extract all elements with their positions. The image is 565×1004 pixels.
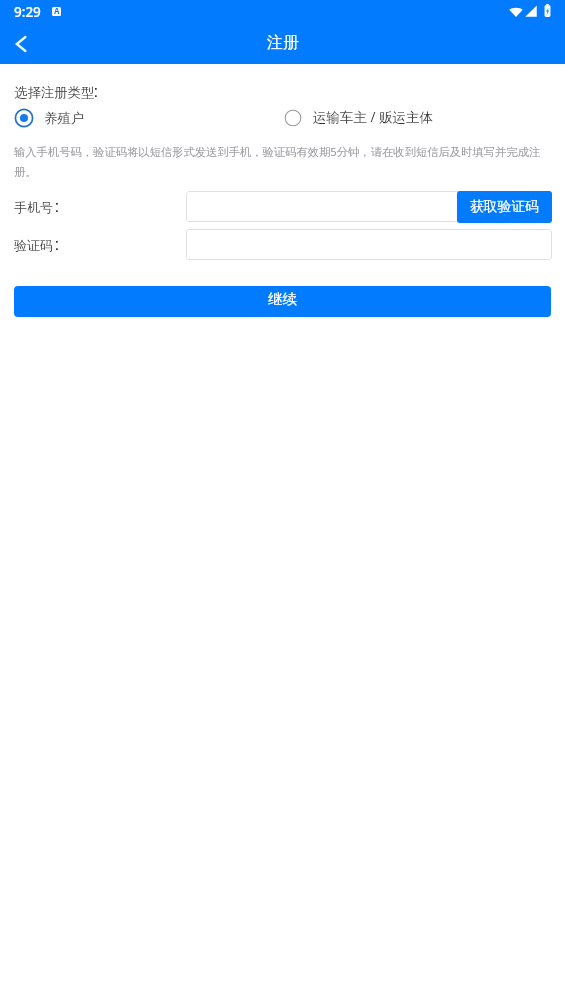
staticText: 验证码	[14, 237, 53, 254]
button[interactable]: 继续	[14, 286, 551, 317]
button[interactable]: 手机号输入框	[186, 191, 552, 222]
staticText: 输入手机号码，验证码将以短信形式发送到手机，验证码有效期5分钟，请在收到短信后及…	[14, 141, 551, 181]
button[interactable]: 验证码输入框	[186, 229, 552, 260]
staticText: 手机号	[14, 199, 53, 216]
staticText: A	[54, 7, 60, 16]
button[interactable]: 养殖户	[14, 108, 85, 128]
button[interactable]: 运输车主 / 贩运主体	[283, 108, 434, 128]
staticText: 养殖户	[44, 110, 85, 127]
button[interactable]: Back	[0, 24, 40, 64]
staticText: 继续	[268, 291, 297, 308]
staticText: 选择注册类型	[14, 84, 95, 102]
staticText: 运输车主 / 贩运主体	[313, 109, 434, 127]
staticText: 9:29	[14, 4, 41, 20]
staticText: 获取验证码	[470, 198, 539, 215]
button[interactable]: 获取验证码	[457, 191, 552, 223]
staticText: 注册	[267, 33, 299, 53]
